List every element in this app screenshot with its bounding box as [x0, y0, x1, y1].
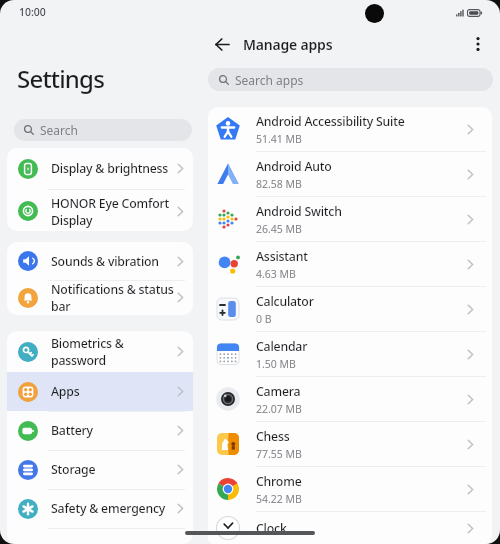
button[interactable]	[210, 34, 234, 54]
staticText: 10:00	[19, 5, 46, 19]
staticText: Android Auto	[256, 158, 332, 175]
staticText: Search	[40, 122, 78, 138]
button[interactable]: HONOR Eye Comfort Display	[7, 190, 193, 231]
button[interactable]: Clock	[208, 512, 492, 544]
staticText: Android Accessibility Suite	[256, 113, 405, 130]
button[interactable]: Sounds & vibration	[7, 242, 193, 280]
staticText: Safety & emergency	[51, 500, 166, 517]
button[interactable]: Chess	[208, 422, 492, 466]
button[interactable]: Chrome	[208, 467, 492, 511]
button[interactable]: Search apps	[208, 68, 493, 91]
staticText: Search apps	[235, 72, 304, 88]
button[interactable]: Calculator	[208, 287, 492, 331]
button[interactable]: Biometrics & password	[7, 331, 193, 372]
staticText: Chrome	[256, 473, 302, 490]
button[interactable]: Calendar	[208, 332, 492, 376]
staticText: 0 B	[256, 312, 272, 326]
button[interactable]: Notifications & status bar	[7, 280, 193, 315]
button[interactable]	[470, 34, 486, 54]
staticText: Manage apps	[243, 35, 333, 54]
staticText: 26.45 MB	[256, 222, 302, 236]
staticText: 54.22 MB	[256, 492, 302, 506]
button[interactable]: Battery	[7, 411, 193, 450]
staticText: 22.07 MB	[256, 402, 302, 416]
button[interactable]: Storage	[7, 450, 193, 489]
staticText: 51.41 MB	[256, 132, 302, 146]
button[interactable]: Assistant	[208, 242, 492, 286]
button[interactable]: Camera	[208, 377, 492, 421]
staticText: 4.63 MB	[256, 267, 296, 281]
button[interactable]: Search	[14, 119, 192, 141]
staticText: Calendar	[256, 338, 308, 355]
button[interactable]: Android Auto	[208, 152, 492, 196]
staticText: Clock	[256, 520, 287, 537]
button[interactable]: Display & brightness	[7, 148, 193, 189]
staticText: Android Switch	[256, 203, 342, 220]
staticText: Chess	[256, 428, 290, 445]
staticText: 1.50 MB	[256, 357, 296, 371]
staticText: Storage	[51, 461, 96, 478]
staticText: HONOR Eye Comfort Display	[51, 195, 169, 228]
button[interactable]: Apps	[7, 372, 193, 411]
staticText: Battery	[51, 422, 93, 439]
staticText: Assistant	[256, 248, 308, 265]
button[interactable]: Android Switch	[208, 197, 492, 241]
staticText: Notifications & status bar	[51, 281, 174, 314]
staticText: 77.55 MB	[256, 447, 302, 461]
button[interactable]: Safety & emergency	[7, 489, 193, 528]
staticText: Sounds & vibration	[51, 253, 159, 270]
staticText: Calculator	[256, 293, 314, 310]
staticText: Camera	[256, 383, 301, 400]
staticText: Settings	[17, 62, 105, 95]
staticText: Apps	[51, 383, 80, 400]
staticText: Biometrics & password	[51, 335, 124, 368]
button[interactable]: Android Accessibility Suite	[208, 107, 492, 151]
staticText: Display & brightness	[51, 160, 169, 177]
staticText: 82.58 MB	[256, 177, 302, 191]
